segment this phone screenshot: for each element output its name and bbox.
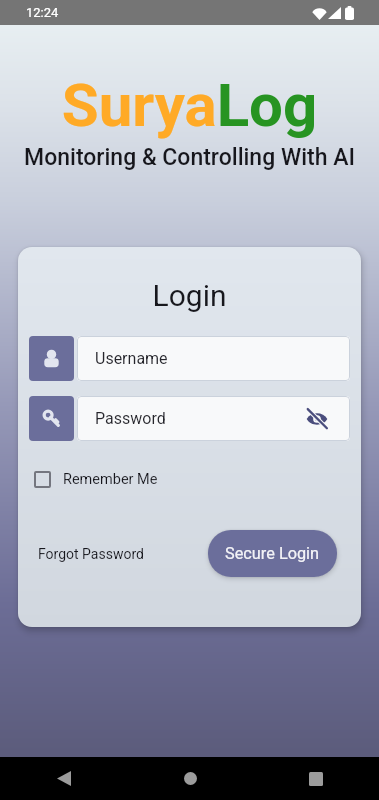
staticText: Forgot Password (38, 546, 144, 562)
button[interactable]: Remember Me (29, 467, 350, 492)
button[interactable]: Back (0, 757, 127, 800)
staticText: Secure Login (225, 544, 320, 563)
staticText: 12:24 (26, 5, 59, 20)
button[interactable]: Home (127, 757, 253, 800)
staticText: Username (95, 349, 168, 368)
staticText: Password (95, 409, 166, 428)
staticText: Monitoring & Controlling With AI (0, 144, 379, 171)
button[interactable]: Recents (253, 757, 379, 800)
button[interactable]: Username (77, 336, 350, 381)
staticText: Login (29, 278, 350, 313)
staticText: SuryaLog (0, 70, 379, 140)
button[interactable]: Password (29, 396, 74, 441)
button[interactable]: Username (29, 336, 74, 381)
button[interactable]: Forgot Password (29, 540, 149, 568)
button[interactable]: Password (77, 396, 350, 441)
staticText: Remember Me (63, 471, 158, 488)
button[interactable]: Secure Login (208, 530, 337, 577)
button[interactable]: Toggle password visibility (306, 408, 328, 430)
